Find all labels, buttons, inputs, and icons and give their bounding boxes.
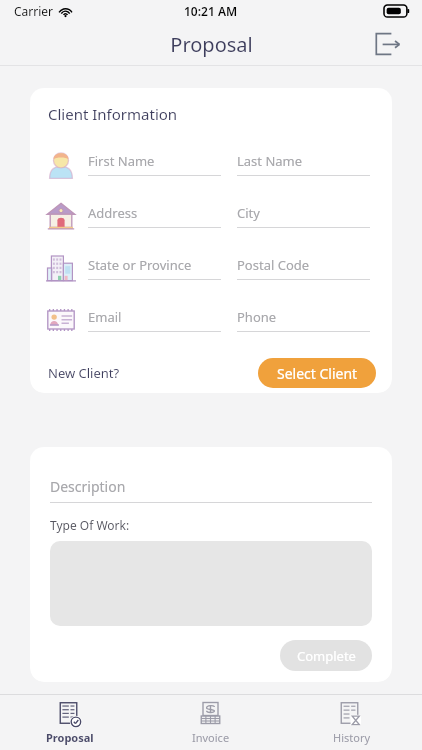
staticText: Address (88, 204, 138, 222)
staticText: Invoice (192, 730, 230, 745)
button[interactable]: City (237, 204, 370, 228)
button[interactable]: History (281, 695, 422, 750)
button[interactable]: Description (50, 477, 372, 503)
button[interactable]: Email (88, 308, 221, 332)
button[interactable]: Phone (237, 308, 370, 332)
button[interactable]: Postal Code (237, 256, 370, 280)
button[interactable]: Log out (368, 24, 408, 64)
staticText: Carrier (14, 3, 54, 19)
staticText: Client Information (48, 104, 178, 124)
button[interactable]: Select Client (258, 358, 376, 388)
staticText: State or Province (88, 256, 192, 274)
staticText: First Name (88, 152, 155, 170)
staticText: Phone (237, 308, 277, 326)
staticText: Description (50, 477, 126, 496)
staticText: Email (88, 308, 122, 326)
staticText: Select Client (277, 364, 358, 383)
staticText: Type Of Work: (50, 517, 130, 533)
staticText: Complete (297, 647, 356, 665)
staticText: City (237, 204, 260, 222)
button[interactable]: Proposal (0, 695, 140, 750)
staticText: New Client? (48, 364, 120, 382)
button[interactable]: New Client? (48, 360, 120, 386)
staticText: Last Name (237, 152, 303, 170)
button[interactable]: Invoice (140, 695, 281, 750)
button[interactable]: Complete (280, 640, 372, 671)
staticText: History (333, 730, 371, 745)
staticText: Postal Code (237, 256, 310, 274)
staticText: Proposal (46, 730, 94, 745)
staticText: Proposal (170, 31, 253, 58)
button[interactable]: Address (88, 204, 221, 228)
staticText: 10:21 AM (184, 3, 238, 19)
button[interactable]: State or Province (88, 256, 221, 280)
button[interactable]: First Name (88, 152, 221, 176)
button[interactable]: Last Name (237, 152, 370, 176)
